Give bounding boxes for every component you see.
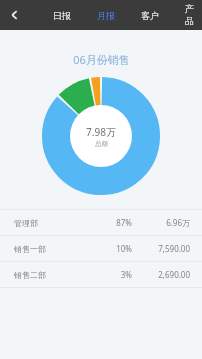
button[interactable]: Back — [0, 0, 30, 30]
staticText: 销售一部 — [14, 244, 46, 254]
staticText: 10% — [116, 243, 132, 254]
staticText: 管理部 — [14, 218, 38, 228]
staticText: 月报 — [97, 10, 115, 21]
button[interactable]: 销售一部 — [0, 236, 202, 261]
staticText: 7,590.00 — [158, 243, 190, 254]
staticText: 06月份销售 — [73, 52, 130, 67]
staticText: 销售二部 — [14, 270, 46, 280]
staticText: 3% — [120, 269, 132, 280]
button[interactable]: 客户 — [132, 0, 168, 30]
staticText: 7.98万 — [86, 125, 116, 139]
staticText: 产品 — [185, 3, 193, 27]
staticText: 87% — [116, 217, 132, 228]
staticText: 总额 — [95, 140, 108, 148]
staticText: 客户 — [141, 10, 159, 21]
staticText: 日报 — [53, 10, 71, 21]
button[interactable]: 管理部 — [0, 210, 202, 235]
button[interactable]: 月报 — [88, 0, 124, 30]
staticText: 6.96万 — [166, 217, 190, 228]
button[interactable]: 产品 — [176, 0, 202, 30]
button[interactable]: 日报 — [44, 0, 80, 30]
button[interactable]: 销售二部 — [0, 262, 202, 287]
staticText: 2,690.00 — [158, 269, 190, 280]
